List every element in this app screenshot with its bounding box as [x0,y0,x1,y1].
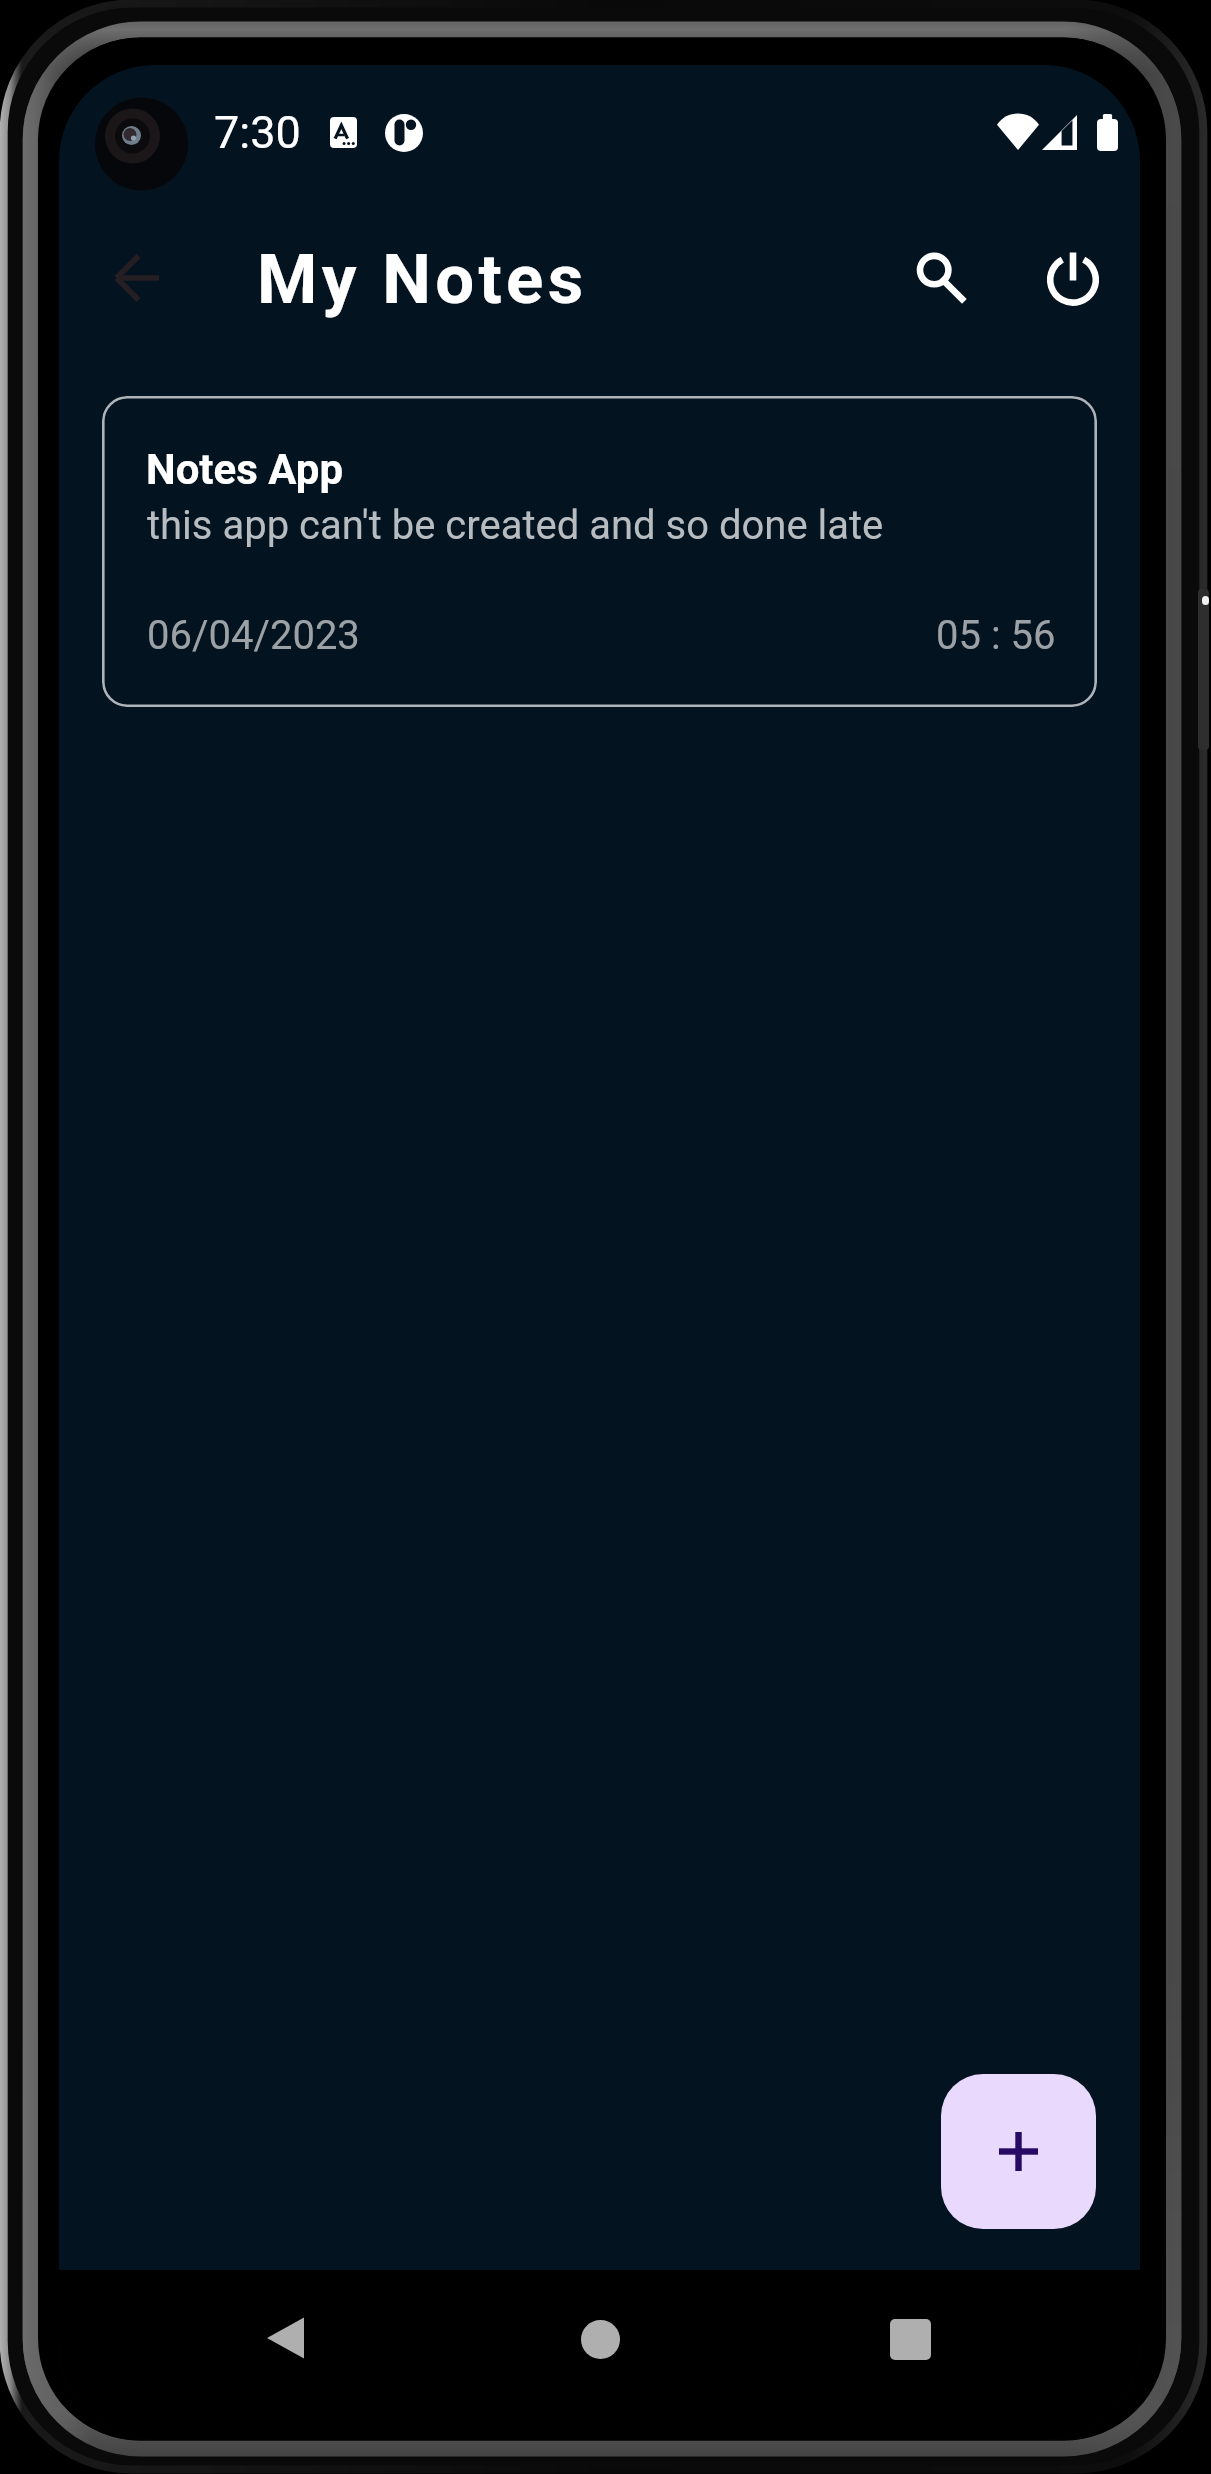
button[interactable]: Search [885,222,995,332]
button[interactable]: Add note [941,2074,1096,2229]
button[interactable]: Logout [1018,224,1128,334]
button[interactable]: Notes App [102,396,1097,707]
button[interactable]: Back [82,223,192,333]
staticText: 7:30 [214,106,301,159]
button[interactable]: Recent apps [862,2291,959,2388]
staticText: Notes App [146,445,344,494]
staticText: this app can't be created and so done la… [147,502,884,549]
button[interactable]: Back [237,2289,334,2386]
staticText: 05 : 56 [936,612,1056,659]
button[interactable]: Home [552,2291,649,2388]
staticText: My Notes [257,239,588,320]
staticText: 06/04/2023 [147,612,360,659]
